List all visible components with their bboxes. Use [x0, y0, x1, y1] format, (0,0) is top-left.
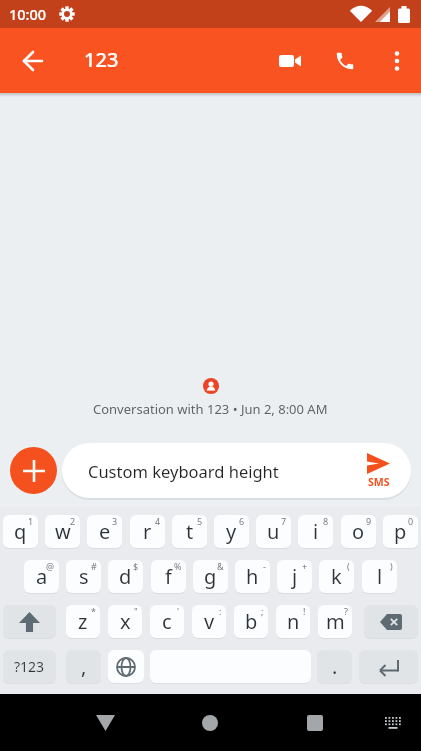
staticText: k — [331, 563, 342, 590]
staticText: u — [267, 518, 280, 545]
button[interactable]: m — [318, 605, 352, 638]
button[interactable] — [108, 650, 144, 683]
staticText: ' — [177, 605, 180, 617]
staticText: e — [99, 518, 111, 545]
staticText: r — [143, 518, 152, 545]
staticText: - — [263, 560, 266, 572]
staticText: 7 — [281, 515, 287, 527]
staticText: y — [226, 518, 237, 545]
staticText: z — [78, 608, 88, 635]
button[interactable]: u — [256, 515, 291, 548]
staticText: ! — [303, 605, 306, 617]
button[interactable]: x — [108, 605, 142, 638]
staticText: q — [14, 518, 27, 545]
button[interactable]: c — [150, 605, 184, 638]
button[interactable]: r — [130, 515, 165, 548]
button[interactable]: p — [383, 515, 418, 548]
button[interactable] — [11, 39, 55, 83]
staticText: 10:00 — [9, 4, 47, 24]
button[interactable]: y — [214, 515, 249, 548]
staticText: p — [394, 518, 407, 545]
button[interactable]: t — [172, 515, 207, 548]
button[interactable]: g — [193, 560, 228, 593]
staticText: $ — [133, 560, 139, 572]
staticText: # — [91, 560, 97, 572]
staticText: 1 — [28, 515, 34, 527]
button[interactable]: b — [234, 605, 268, 638]
staticText: o — [352, 518, 365, 545]
button[interactable] — [268, 39, 312, 83]
button[interactable]: q — [3, 515, 38, 548]
staticText: 123 — [84, 46, 119, 73]
staticText: , — [81, 653, 87, 680]
staticText: ? — [344, 605, 348, 617]
button[interactable]: , — [66, 650, 101, 683]
button[interactable] — [323, 39, 367, 83]
staticText: @ — [46, 560, 55, 572]
staticText: ) — [390, 560, 393, 572]
staticText: % — [174, 560, 182, 572]
button[interactable]: k — [319, 560, 354, 593]
staticText: b — [245, 608, 258, 635]
button[interactable]: n — [276, 605, 310, 638]
button[interactable]: a — [24, 560, 59, 593]
button[interactable]: h — [235, 560, 270, 593]
button[interactable]: v — [192, 605, 226, 638]
staticText: SMS — [368, 475, 390, 489]
staticText: g — [204, 563, 217, 590]
staticText: . — [332, 653, 338, 680]
staticText: ; — [261, 605, 264, 617]
staticText: 2 — [70, 515, 76, 527]
staticText: 3 — [112, 515, 118, 527]
button[interactable]: s — [66, 560, 101, 593]
button[interactable] — [364, 605, 418, 638]
staticText: h — [246, 563, 259, 590]
button[interactable] — [188, 701, 232, 745]
staticText: Conversation with 123 • Jun 2, 8:00 AM — [93, 400, 328, 418]
button[interactable] — [375, 39, 419, 83]
staticText: n — [287, 608, 300, 635]
staticText: 5 — [197, 515, 203, 527]
button[interactable]: ?123 — [3, 650, 56, 683]
staticText: v — [204, 608, 215, 635]
staticText: t — [186, 518, 194, 545]
staticText: 4 — [155, 515, 161, 527]
button[interactable] — [10, 447, 57, 494]
button[interactable]: SMS — [367, 453, 390, 489]
button[interactable] — [83, 701, 127, 745]
button[interactable]: o — [341, 515, 376, 548]
staticText: w — [55, 518, 71, 545]
button[interactable]: Custom keyboard height — [62, 443, 411, 498]
button[interactable]: e — [87, 515, 122, 548]
staticText: : — [219, 605, 222, 617]
staticText: ( — [347, 560, 350, 572]
button[interactable]: z — [66, 605, 100, 638]
button[interactable]: j — [277, 560, 312, 593]
staticText: a — [36, 563, 48, 590]
button[interactable]: i — [298, 515, 333, 548]
staticText: + — [302, 560, 308, 572]
staticText: s — [79, 563, 89, 590]
button[interactable] — [3, 605, 56, 638]
staticText: Custom keyboard height — [88, 460, 279, 482]
button[interactable] — [293, 701, 337, 745]
staticText: & — [217, 560, 224, 572]
staticText: 0 — [408, 515, 414, 527]
button[interactable] — [371, 701, 415, 745]
staticText: * — [91, 605, 96, 617]
button[interactable] — [359, 650, 418, 683]
staticText: 9 — [366, 515, 372, 527]
staticText: c — [162, 608, 172, 635]
staticText: " — [134, 605, 138, 617]
staticText: x — [120, 608, 131, 635]
button[interactable]: w — [45, 515, 80, 548]
staticText: m — [326, 608, 345, 635]
button[interactable]: f — [151, 560, 186, 593]
button[interactable]: d — [108, 560, 143, 593]
button[interactable]: . — [317, 650, 352, 683]
staticText: 8 — [323, 515, 329, 527]
staticText: f — [165, 563, 172, 590]
button[interactable]: l — [362, 560, 397, 593]
staticText: d — [119, 563, 132, 590]
